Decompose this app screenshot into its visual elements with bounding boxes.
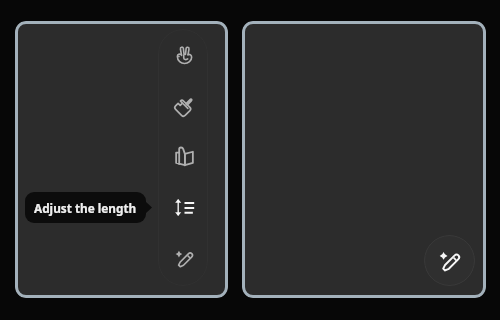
button[interactable]: Brush styles: [164, 85, 204, 125]
button[interactable]: Adjust the length: [164, 187, 204, 227]
button[interactable]: Read aloud: [164, 136, 204, 176]
button[interactable]: Peace: [164, 34, 204, 74]
staticText: Adjust the length: [34, 200, 137, 216]
button[interactable]: Magic edit: [424, 235, 475, 286]
button[interactable]: Magic edit: [164, 238, 204, 278]
